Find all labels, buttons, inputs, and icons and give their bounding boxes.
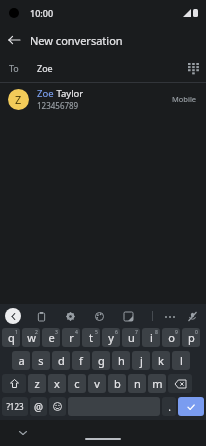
button[interactable]: Voice input off xyxy=(185,309,200,324)
other: Emoji xyxy=(53,402,62,411)
staticText: x xyxy=(54,376,60,391)
button[interactable]: Settings xyxy=(63,309,78,324)
button[interactable]: r xyxy=(62,328,80,347)
other: Shift xyxy=(10,379,19,388)
button[interactable]: k xyxy=(152,351,170,370)
staticText: . xyxy=(168,400,171,414)
staticText: i xyxy=(150,330,153,345)
staticText: r xyxy=(69,330,74,345)
staticText: Mobile xyxy=(172,94,197,104)
staticText: z xyxy=(34,376,40,391)
staticText: @ xyxy=(34,400,43,414)
button[interactable]: Backspace xyxy=(168,374,192,393)
staticText: ?123 xyxy=(6,401,24,412)
staticText: Taylor xyxy=(54,87,84,100)
button[interactable]: ?123 xyxy=(2,397,28,416)
staticText: c xyxy=(74,376,80,391)
staticText: 0 xyxy=(195,329,198,336)
other: Backspace xyxy=(175,380,186,388)
staticText: To xyxy=(9,62,19,74)
staticText: a xyxy=(18,353,25,368)
staticText: Zoe xyxy=(37,87,54,100)
button[interactable]: l xyxy=(172,351,190,370)
staticText: 9 xyxy=(175,329,178,336)
button[interactable]: v xyxy=(88,374,106,393)
staticText: 4 xyxy=(75,329,78,336)
button[interactable]: c xyxy=(68,374,86,393)
staticText: Z xyxy=(15,92,22,107)
staticText: d xyxy=(58,353,65,368)
button[interactable]: Hide keyboard xyxy=(15,425,31,441)
button[interactable]: Shift xyxy=(2,374,26,393)
button[interactable]: Clipboard xyxy=(34,309,49,324)
staticText: Zoe xyxy=(37,62,180,74)
staticText: y xyxy=(108,330,114,345)
button[interactable]: q xyxy=(2,328,20,347)
button[interactable]: g xyxy=(92,351,110,370)
button[interactable]: m xyxy=(148,374,166,393)
button[interactable]: Stickers xyxy=(121,309,136,324)
button[interactable]: o xyxy=(162,328,180,347)
button[interactable]: x xyxy=(48,374,66,393)
button[interactable]: u xyxy=(122,328,140,347)
staticText: 8 xyxy=(155,329,158,336)
button[interactable]: f xyxy=(72,351,90,370)
staticText: 2 xyxy=(35,329,38,336)
staticText: u xyxy=(128,330,135,345)
staticText: q xyxy=(8,330,15,345)
button[interactable]: d xyxy=(52,351,70,370)
button[interactable]: b xyxy=(108,374,126,393)
staticText: t xyxy=(89,330,93,345)
staticText: w xyxy=(27,330,36,345)
button[interactable]: . xyxy=(162,397,176,416)
staticText: 5 xyxy=(95,329,98,336)
staticText: 123456789 xyxy=(37,100,79,111)
button[interactable]: h xyxy=(112,351,130,370)
staticText: s xyxy=(38,353,44,368)
staticText: f xyxy=(79,353,83,368)
button[interactable]: @ xyxy=(30,397,47,416)
button[interactable]: More options xyxy=(162,309,177,324)
button[interactable]: w xyxy=(22,328,40,347)
staticText: New conversation xyxy=(30,33,123,48)
button[interactable]: Dial pad xyxy=(180,55,206,81)
button[interactable]: Z xyxy=(0,83,206,115)
staticText: 7 xyxy=(135,329,138,336)
staticText: l xyxy=(180,353,183,368)
staticText: 3 xyxy=(55,329,58,336)
staticText: h xyxy=(118,353,125,368)
button[interactable]: p xyxy=(182,328,200,347)
staticText: o xyxy=(168,330,175,345)
staticText: m xyxy=(152,376,163,391)
staticText: j xyxy=(140,353,143,368)
staticText: 6 xyxy=(115,329,118,336)
staticText: v xyxy=(94,376,100,391)
button[interactable]: Back xyxy=(0,26,28,54)
button[interactable]: n xyxy=(128,374,146,393)
staticText: b xyxy=(114,376,121,391)
staticText: n xyxy=(134,376,141,391)
button[interactable]: Enter xyxy=(178,397,204,416)
button[interactable]: Theme xyxy=(92,309,107,324)
button[interactable]: e xyxy=(42,328,60,347)
button[interactable]: s xyxy=(32,351,50,370)
staticText: p xyxy=(188,330,195,345)
button[interactable]: Expand xyxy=(5,308,21,324)
staticText: e xyxy=(48,330,55,345)
staticText: 10:00 xyxy=(30,7,54,19)
button[interactable]: a xyxy=(12,351,30,370)
staticText: k xyxy=(158,353,164,368)
button[interactable]: Emoji xyxy=(49,397,66,416)
button[interactable]: z xyxy=(28,374,46,393)
button[interactable]: j xyxy=(132,351,150,370)
staticText: 1 xyxy=(15,329,18,336)
button[interactable]: y xyxy=(102,328,120,347)
button[interactable]: i xyxy=(142,328,160,347)
staticText: g xyxy=(98,353,105,368)
button[interactable]: t xyxy=(82,328,100,347)
